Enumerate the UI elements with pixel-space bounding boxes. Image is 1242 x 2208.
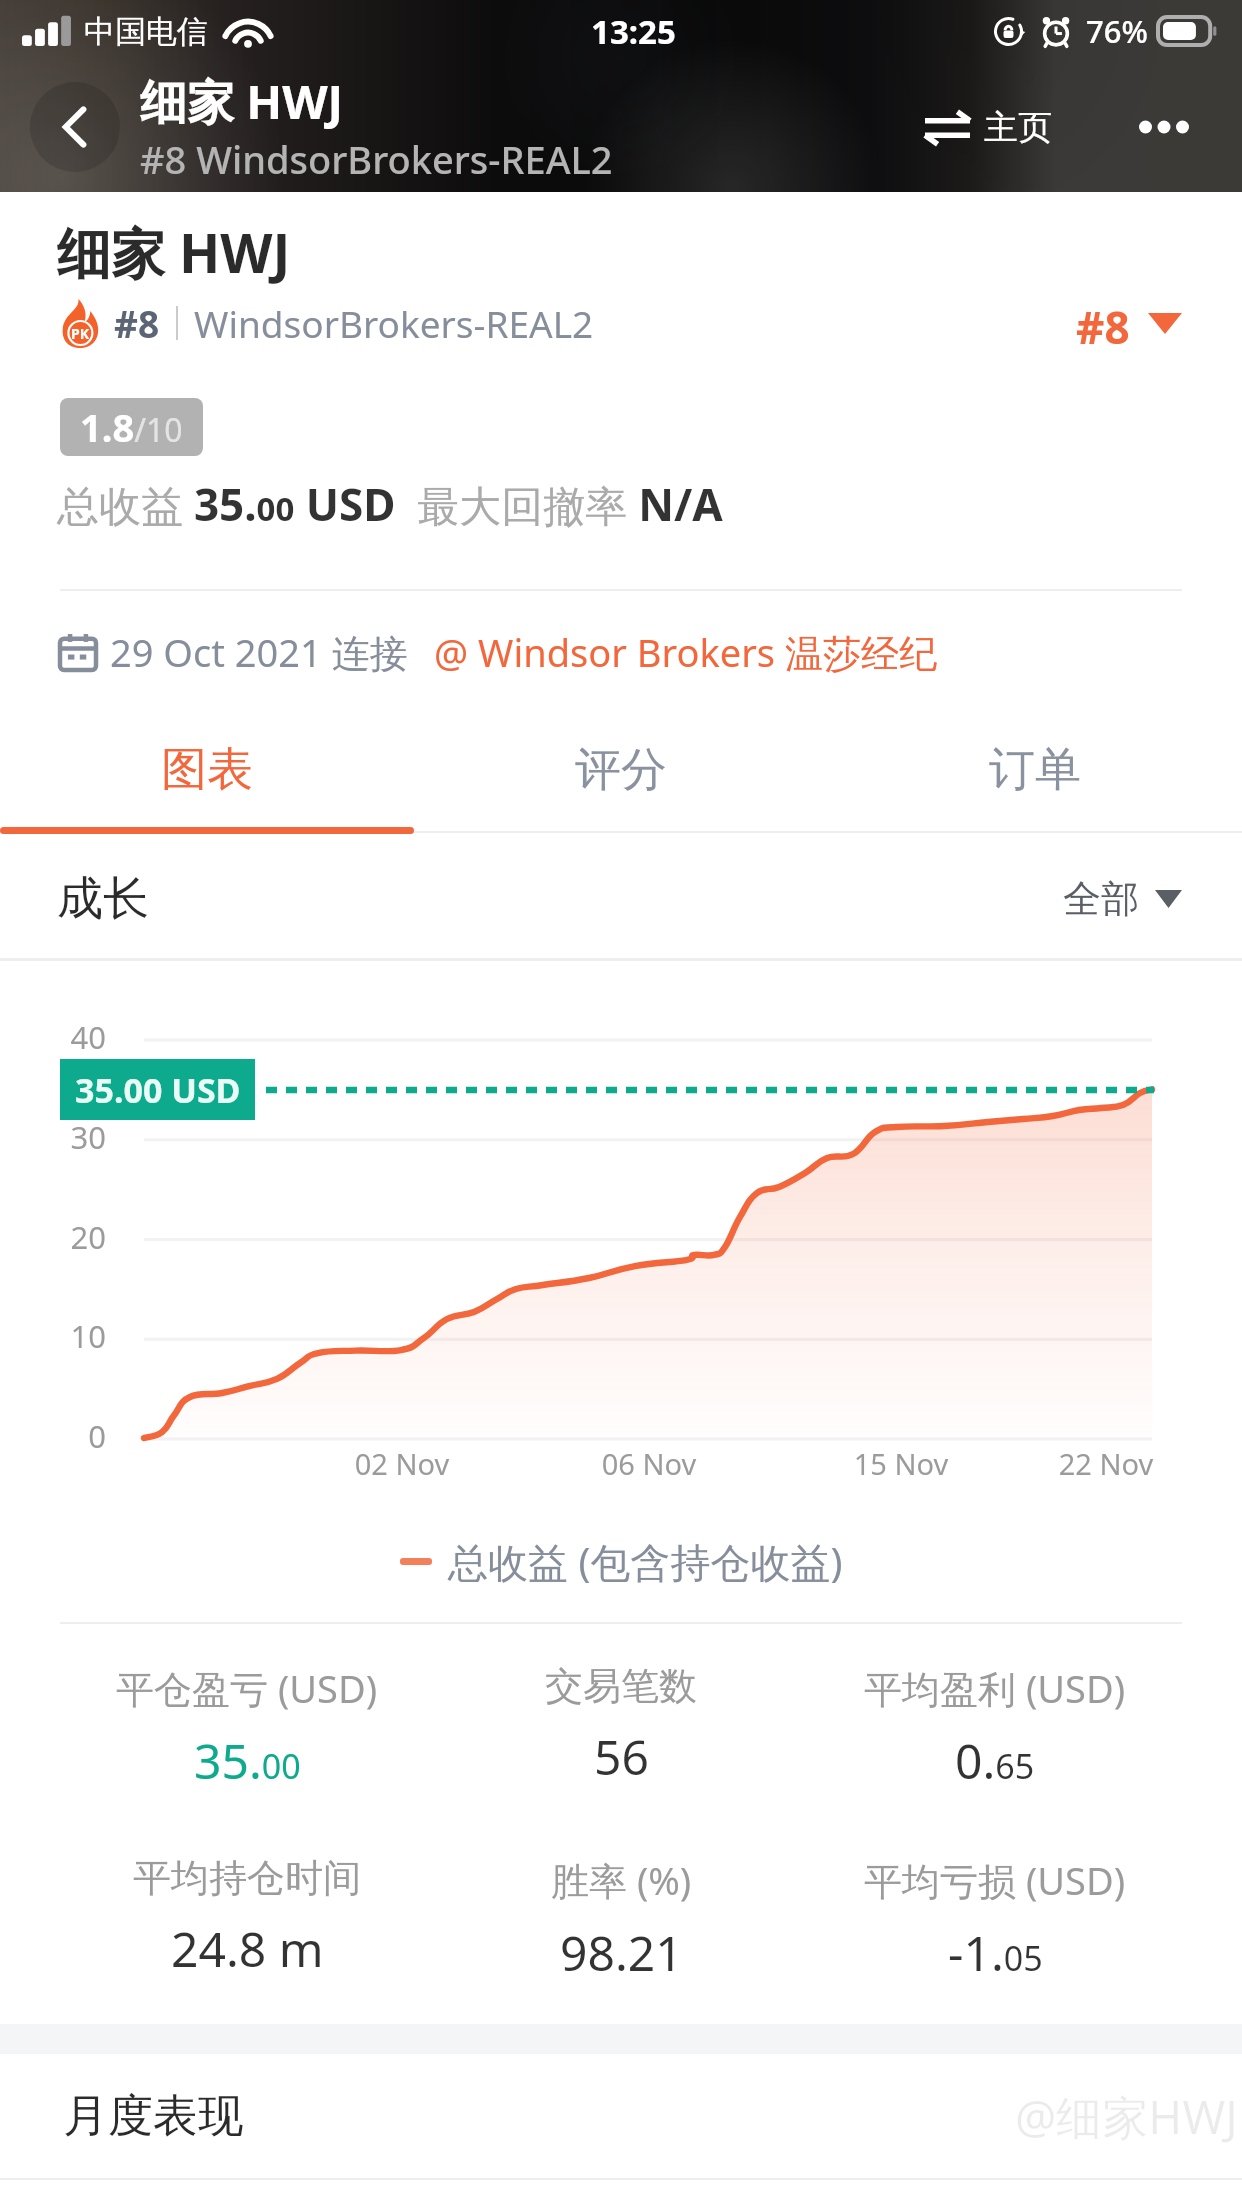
staticText: 1.8/10 [80,401,183,453]
button[interactable]: Back [30,82,120,172]
staticText: #8 [114,298,160,348]
staticText: 平仓盈亏 (USD) [116,1662,378,1714]
staticText: 全部 [1063,875,1139,923]
staticText: 图表 [161,741,253,799]
staticText: 细家 HWJ [140,69,344,133]
staticText: -1.05 [948,1920,1043,1985]
staticText: @细家HWJ [1015,2085,1238,2148]
staticText: 30 [34,1116,106,1158]
staticText: 成长 [57,870,149,928]
button[interactable]: 订单 [828,714,1242,826]
staticText: #8 [1076,297,1130,349]
button[interactable]: @ Windsor Brokers 温莎经纪 [434,626,937,678]
button[interactable]: 图表 [0,714,414,826]
staticText: 29 Oct 2021 连接 [110,626,408,678]
staticText: 40 [34,1016,106,1058]
staticText: 02 Nov [312,1444,492,1483]
staticText: 平均盈利 (USD) [864,1662,1126,1714]
staticText: 总收益 (包含持仓收益) [448,1534,843,1589]
button[interactable]: #8 [1076,297,1182,349]
staticText: 中国电信 [84,12,208,51]
button[interactable]: 评分 [414,714,828,826]
staticText: 总收益 35.00 USD 最大回撤率 N/A [57,474,723,534]
staticText: 平均持仓时间 [133,1854,361,1902]
staticText: 35.00 USD [75,1067,241,1113]
button[interactable]: 全部 [1063,875,1182,923]
staticText: 平均亏损 (USD) [864,1854,1126,1906]
staticText: 56 [594,1724,649,1789]
staticText: WindsorBrokers-REAL2 [194,298,594,348]
staticText: 13:25 [591,9,676,54]
staticText: 76% [1086,10,1148,52]
button[interactable]: 主页 [911,92,1066,163]
staticText: 月度表现 [63,2088,243,2145]
staticText: 0.65 [955,1728,1035,1793]
staticText: 订单 [989,741,1081,799]
staticText: 10 [34,1315,106,1357]
staticText: 15 Nov [811,1444,991,1483]
staticText: 细家 HWJ [57,215,291,289]
staticText: 98.21 [560,1920,683,1985]
staticText: 交易笔数 [545,1662,697,1710]
staticText: 胜率 (%) [551,1854,692,1906]
staticText: 06 Nov [559,1444,739,1483]
staticText: 0 [34,1415,106,1457]
staticText: 22 Nov [1016,1444,1196,1483]
staticText: 主页 [984,106,1052,149]
staticText: 20 [34,1216,106,1258]
staticText: PK [71,324,89,343]
staticText: 24.8 m [171,1916,324,1981]
staticText: 35.00 [194,1728,301,1793]
staticText: @ Windsor Brokers 温莎经纪 [434,626,937,678]
staticText: 评分 [575,741,667,799]
staticText: #8 WindsorBrokers-REAL2 [140,133,613,185]
button[interactable]: More options [1119,82,1209,172]
